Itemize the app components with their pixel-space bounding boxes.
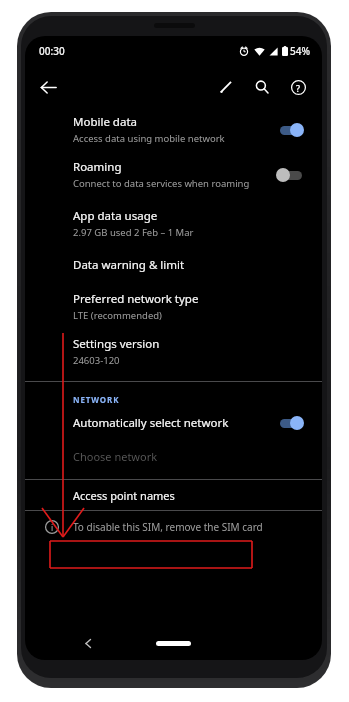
staticText: 2.97 GB used 2 Feb – 1 Mar — [73, 226, 194, 239]
staticText: Settings version — [73, 336, 160, 352]
button[interactable]: Roaming — [25, 159, 322, 190]
button[interactable]: Back — [31, 70, 65, 104]
staticText: Preferred network type — [73, 291, 199, 307]
staticText: App data usage — [73, 208, 158, 224]
staticText: 00:30 — [39, 44, 65, 58]
staticText: ? — [296, 82, 301, 94]
staticText: 24603-120 — [73, 354, 120, 367]
button[interactable]: Back — [77, 632, 99, 654]
staticText: Roaming — [73, 159, 122, 175]
button[interactable]: Automatically select network — [25, 415, 322, 431]
button[interactable]: Search — [246, 71, 278, 103]
staticText: Connect to data services when roaming — [73, 177, 250, 190]
staticText: LTE (recommended) — [73, 309, 162, 322]
button[interactable]: Choose network — [25, 445, 322, 467]
button[interactable]: Preferred network type — [25, 291, 322, 322]
staticText: Data warning & limit — [73, 257, 185, 273]
staticText: i — [51, 522, 54, 533]
staticText: To disable this SIM, remove the SIM card — [73, 520, 263, 534]
button[interactable]: Home — [156, 641, 191, 646]
staticText: Mobile data — [73, 114, 137, 130]
button[interactable]: Edit — [210, 71, 242, 103]
staticText: Choose network — [73, 449, 158, 464]
button[interactable]: Settings version — [25, 336, 322, 367]
staticText: NETWORK — [73, 394, 120, 405]
staticText: Automatically select network — [73, 415, 229, 431]
button[interactable]: Help — [282, 71, 314, 103]
staticText: Access point names — [73, 488, 175, 503]
button[interactable]: App data usage — [25, 208, 322, 239]
button[interactable]: Mobile data — [25, 114, 322, 145]
button[interactable]: Data warning & limit — [25, 257, 322, 273]
staticText: 54% — [290, 44, 310, 58]
button[interactable]: Access point names — [25, 480, 322, 510]
staticText: Access data using mobile network — [73, 132, 225, 145]
